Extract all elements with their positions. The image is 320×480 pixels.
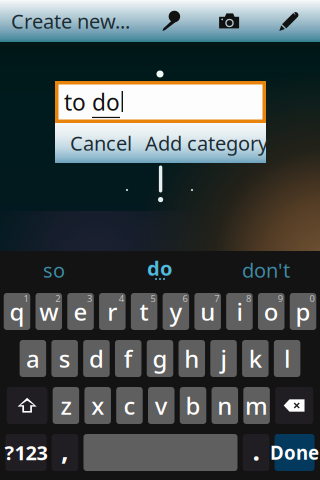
button[interactable]: s	[51, 340, 78, 377]
button[interactable]: v	[148, 387, 174, 424]
button[interactable]: f	[115, 340, 141, 377]
button[interactable]: Take photo note	[203, 0, 255, 42]
button[interactable]: m	[243, 387, 270, 424]
staticText: g	[152, 343, 167, 374]
staticText: o	[264, 296, 279, 327]
button[interactable]: b	[180, 387, 206, 424]
staticText: e	[74, 296, 88, 327]
button[interactable]: g	[147, 340, 173, 377]
button[interactable]: z	[53, 387, 79, 424]
button[interactable]: q	[4, 293, 30, 330]
staticText: 6	[182, 292, 187, 305]
button[interactable]: Backspace	[275, 387, 313, 424]
staticText: Done	[270, 440, 319, 465]
staticText: Cancel	[70, 130, 132, 156]
staticText: c	[123, 390, 135, 421]
staticText: y	[169, 296, 182, 327]
staticText: m	[245, 390, 268, 421]
button[interactable]: c	[116, 387, 143, 424]
button[interactable]: Space	[83, 434, 237, 471]
staticText: s	[59, 343, 71, 374]
staticText: do	[147, 255, 173, 281]
staticText: u	[200, 296, 215, 327]
staticText: 2	[55, 292, 60, 305]
button[interactable]: Period	[243, 434, 269, 471]
button[interactable]: p	[290, 293, 316, 330]
staticText: d	[89, 343, 104, 374]
staticText: do	[92, 87, 120, 117]
staticText: j	[221, 343, 227, 374]
staticText: 4	[119, 292, 124, 305]
staticText: w	[39, 296, 58, 327]
staticText: z	[60, 390, 71, 421]
button[interactable]: l	[274, 340, 300, 377]
staticText: ?123	[4, 439, 47, 466]
staticText: 3	[87, 292, 92, 305]
button[interactable]: x	[84, 387, 111, 424]
staticText: x	[91, 390, 104, 421]
button[interactable]: Symbols and numbers	[5, 434, 46, 471]
staticText: Add category	[145, 130, 268, 156]
staticText: Create new...	[11, 8, 130, 34]
button[interactable]: n	[212, 387, 238, 424]
button[interactable]: Shift	[7, 387, 47, 424]
staticText: i	[236, 296, 242, 327]
staticText: p	[295, 296, 310, 327]
button[interactable]: Record audio note	[145, 0, 197, 42]
button[interactable]: d	[83, 340, 110, 377]
staticText: l	[284, 343, 290, 374]
button[interactable]: r	[99, 293, 126, 330]
staticText: ,	[61, 433, 69, 468]
button[interactable]: u	[194, 293, 221, 330]
button[interactable]: Draw note	[263, 0, 315, 42]
staticText: b	[185, 390, 200, 421]
staticText: n	[217, 390, 232, 421]
button[interactable]: don't	[213, 251, 319, 289]
staticText: 9	[278, 292, 283, 305]
button[interactable]: do	[107, 251, 213, 289]
button[interactable]: Comma	[52, 434, 78, 471]
button[interactable]: Cancel	[55, 123, 147, 163]
button[interactable]: Add category	[147, 123, 266, 163]
staticText: 0	[309, 292, 314, 305]
staticText: 7	[214, 292, 219, 305]
button[interactable]: so	[1, 251, 107, 289]
button[interactable]: e	[67, 293, 94, 330]
button[interactable]: j	[210, 340, 237, 377]
button[interactable]: Done	[275, 434, 315, 471]
button[interactable]: i	[226, 293, 253, 330]
button[interactable]: y	[163, 293, 189, 330]
button[interactable]: w	[35, 293, 62, 330]
staticText: 1	[23, 292, 28, 305]
staticText: v	[155, 390, 168, 421]
staticText: t	[140, 296, 149, 327]
staticText: 5	[151, 292, 156, 305]
staticText: .	[252, 433, 259, 468]
button[interactable]: a	[20, 340, 46, 377]
button[interactable]: h	[178, 340, 205, 377]
button[interactable]: o	[258, 293, 284, 330]
staticText: k	[249, 343, 262, 374]
button[interactable]: k	[242, 340, 269, 377]
button[interactable]: t	[131, 293, 157, 330]
staticText: don't	[242, 257, 290, 283]
staticText: 8	[246, 292, 251, 305]
staticText: to	[64, 87, 92, 117]
staticText: r	[107, 296, 117, 327]
staticText: q	[9, 296, 24, 327]
staticText: a	[26, 343, 40, 374]
staticText: f	[124, 343, 133, 374]
staticText: so	[43, 257, 65, 283]
staticText: h	[184, 343, 199, 374]
